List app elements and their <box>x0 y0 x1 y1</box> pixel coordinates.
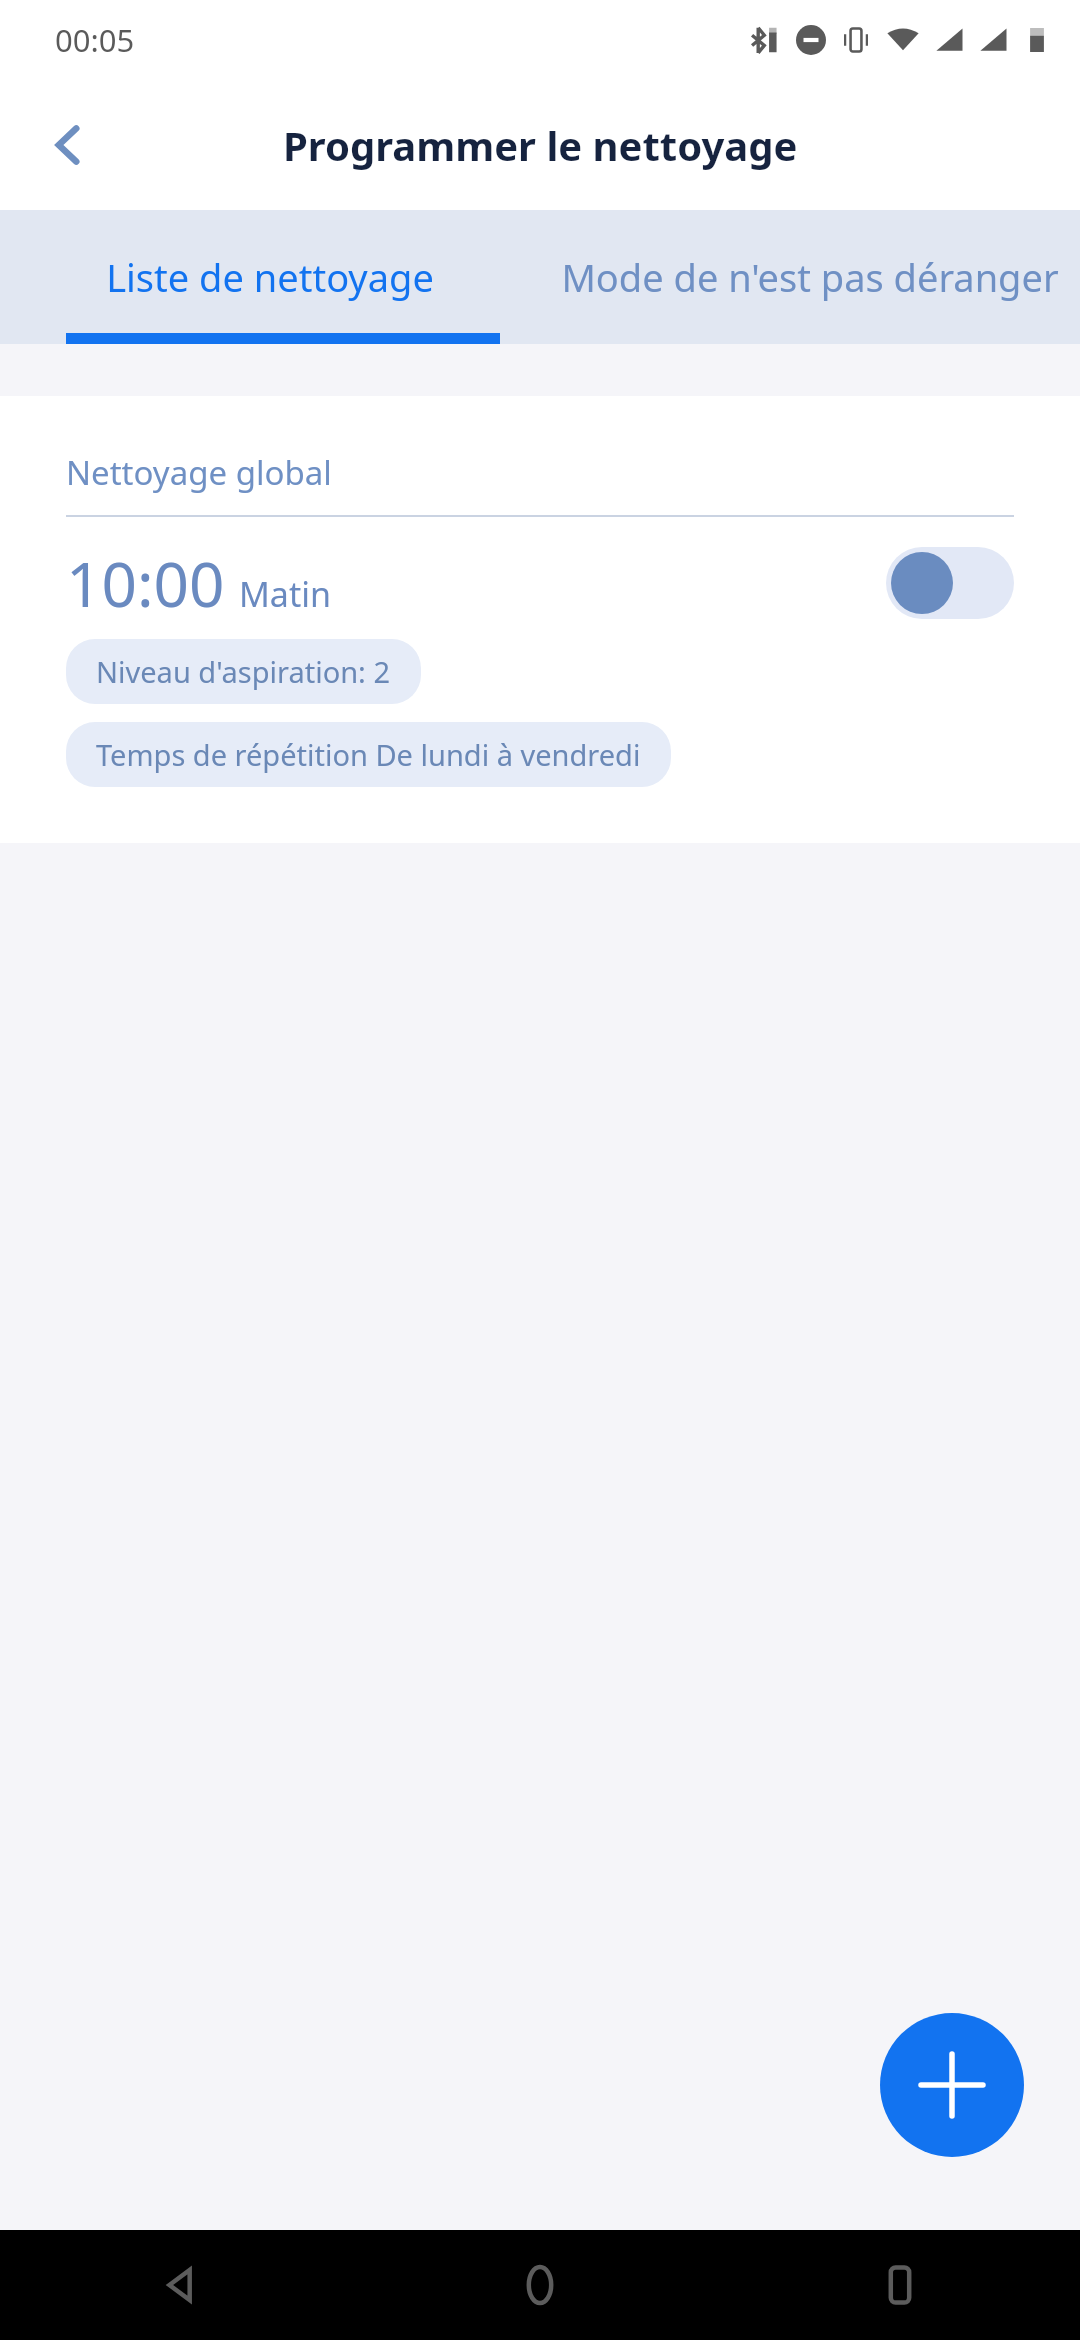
button[interactable]: Activer le programme <box>886 547 1014 619</box>
button[interactable]: Liste de nettoyage <box>0 210 540 344</box>
staticText: Matin <box>239 571 331 617</box>
button[interactable]: Niveau d'aspiration: 2 <box>66 639 421 704</box>
staticText: Programmer le nettoyage <box>283 118 798 172</box>
staticText: 00:05 <box>55 19 135 61</box>
staticText: 10:00 <box>66 541 225 625</box>
staticText: Liste de nettoyage <box>106 251 434 303</box>
button[interactable]: Mode de n'est pas déranger <box>540 210 1080 344</box>
button[interactable]: Applications récentes <box>720 2230 1080 2340</box>
staticText: Niveau d'aspiration: 2 <box>96 652 391 691</box>
button[interactable]: Retour <box>22 99 114 191</box>
button[interactable]: Ajouter <box>880 2013 1024 2157</box>
staticText: Nettoyage global <box>66 450 332 495</box>
staticText: Temps de répétition De lundi à vendredi <box>96 735 641 774</box>
button[interactable]: Retour <box>0 2230 360 2340</box>
staticText: Mode de n'est pas déranger <box>561 251 1059 303</box>
button[interactable]: Accueil <box>360 2230 720 2340</box>
button[interactable]: Temps de répétition De lundi à vendredi <box>66 722 671 787</box>
